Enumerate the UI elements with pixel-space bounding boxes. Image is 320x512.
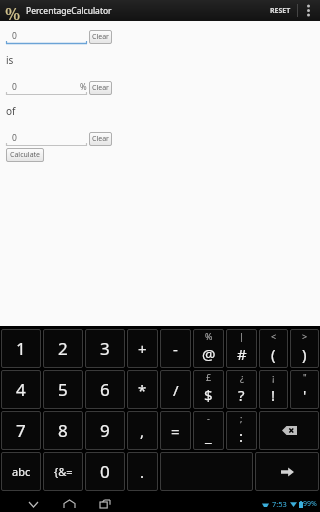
button[interactable]: 9 — [85, 411, 125, 450]
staticText: = — [171, 421, 180, 441]
staticText: 0 — [100, 460, 110, 483]
button[interactable]: Backspace — [259, 411, 319, 450]
staticText: ¡ — [272, 371, 275, 383]
staticText: Clear — [92, 134, 109, 144]
button[interactable]: More options — [303, 0, 314, 21]
button[interactable]: abc — [1, 452, 41, 491]
staticText: 2 — [58, 337, 68, 360]
button[interactable]: 0 — [85, 452, 125, 491]
button[interactable]: , — [127, 411, 158, 450]
staticText: - — [207, 412, 210, 424]
button[interactable]: {&= — [43, 452, 83, 491]
staticText: $ — [204, 385, 213, 405]
button[interactable]: | — [226, 329, 257, 368]
staticText: 1 — [16, 337, 26, 360]
button[interactable]: / — [160, 370, 191, 409]
staticText: @ — [202, 344, 216, 364]
staticText: / — [173, 380, 179, 400]
staticText: ? — [238, 385, 245, 405]
staticText: * — [138, 380, 147, 400]
staticText: 0 — [12, 30, 17, 42]
button[interactable]: Recent apps — [94, 496, 116, 512]
button[interactable]: Calculate — [6, 148, 44, 162]
staticText: ! — [271, 385, 276, 405]
staticText: 99% — [303, 499, 317, 509]
button[interactable]: ¡ — [259, 370, 288, 409]
staticText: is — [6, 53, 14, 67]
button[interactable]: - — [193, 411, 224, 450]
staticText: 3 — [100, 337, 110, 360]
staticText: PercentageCalculator — [26, 5, 112, 17]
staticText: Clear — [92, 32, 109, 42]
staticText: Calculate — [10, 150, 41, 160]
staticText: ¿ — [240, 371, 244, 383]
staticText: Clear — [92, 83, 109, 93]
staticText: 7:53 — [272, 499, 287, 509]
staticText: abc — [12, 464, 31, 479]
button[interactable]: + — [127, 329, 158, 368]
button[interactable]: 8 — [43, 411, 83, 450]
button[interactable]: > — [290, 329, 319, 368]
button[interactable]: 1 — [1, 329, 41, 368]
staticText: 0 — [12, 81, 17, 93]
staticText: < — [271, 330, 277, 342]
button[interactable]: 5 — [43, 370, 83, 409]
button[interactable]: * — [127, 370, 158, 409]
button[interactable]: ¿ — [226, 370, 257, 409]
staticText: ) — [302, 344, 307, 364]
button[interactable]: % — [193, 329, 224, 368]
staticText: + — [138, 339, 147, 359]
button[interactable]: - — [160, 329, 191, 368]
button[interactable]: < — [259, 329, 288, 368]
staticText: % — [205, 330, 213, 342]
button[interactable]: RESET — [270, 0, 291, 21]
staticText: % — [5, 2, 21, 20]
button[interactable]: 6 — [85, 370, 125, 409]
button[interactable]: 3 — [85, 329, 125, 368]
staticText: " — [303, 371, 307, 383]
staticText: : — [239, 426, 244, 446]
button[interactable] — [160, 452, 253, 491]
staticText: ' — [303, 385, 307, 405]
staticText: ( — [271, 344, 276, 364]
staticText: , — [140, 421, 145, 441]
staticText: £ — [206, 371, 212, 383]
staticText: . — [140, 462, 145, 482]
staticText: | — [239, 330, 244, 342]
staticText: RESET — [270, 6, 291, 16]
button[interactable]: Enter — [255, 452, 319, 491]
staticText: - — [173, 339, 178, 359]
staticText: 6 — [100, 378, 110, 401]
button[interactable]: Clear — [89, 30, 112, 44]
staticText: _ — [205, 426, 212, 446]
staticText: > — [302, 330, 308, 342]
button[interactable]: " — [290, 370, 319, 409]
staticText: % — [80, 81, 87, 92]
button[interactable]: Clear — [89, 81, 112, 95]
button[interactable]: £ — [193, 370, 224, 409]
staticText: 7 — [16, 419, 26, 442]
button[interactable]: 2 — [43, 329, 83, 368]
button[interactable]: ; — [226, 411, 257, 450]
button[interactable]: 4 — [1, 370, 41, 409]
button[interactable]: 7 — [1, 411, 41, 450]
staticText: ; — [240, 412, 243, 424]
staticText: 8 — [58, 419, 68, 442]
staticText: of — [6, 104, 16, 118]
staticText: 9 — [100, 419, 110, 442]
button[interactable]: Back — [22, 496, 44, 512]
button[interactable]: . — [127, 452, 158, 491]
staticText: 0 — [12, 132, 17, 144]
button[interactable]: Home — [58, 496, 80, 512]
staticText: 4 — [16, 378, 26, 401]
button[interactable]: Clear — [89, 132, 112, 146]
button[interactable]: = — [160, 411, 191, 450]
staticText: 5 — [58, 378, 68, 401]
staticText: # — [237, 344, 247, 364]
staticText: {&= — [54, 464, 73, 479]
